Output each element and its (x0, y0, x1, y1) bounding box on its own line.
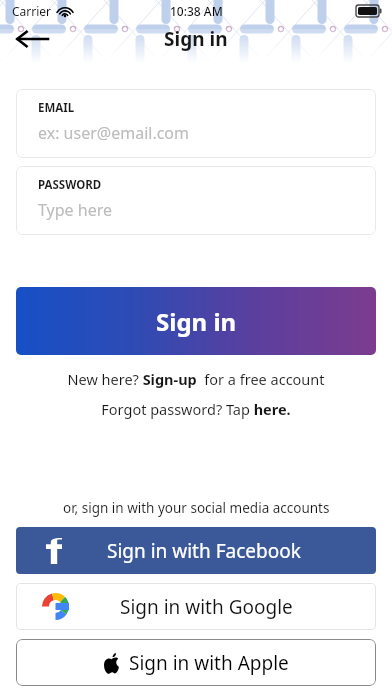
staticText: 10:38 AM (170, 3, 223, 19)
staticText: Type here (38, 199, 112, 221)
staticText: Sign in with Google (120, 594, 293, 620)
staticText: Carrier (12, 3, 52, 19)
button[interactable]: Sign in with Facebook (16, 527, 376, 574)
staticText: Forgot password? Tap here. (101, 399, 291, 419)
staticText: or, sign in with your social media accou… (63, 499, 330, 517)
staticText: EMAIL (38, 100, 75, 116)
staticText: Sign in with Facebook (107, 538, 301, 564)
button[interactable]: Sign in with Apple (16, 639, 376, 686)
staticText: Sign in (164, 26, 228, 52)
staticText: New here? Sign-up for a free account (67, 369, 325, 389)
staticText: PASSWORD (38, 177, 102, 193)
staticText: Sign in (156, 305, 237, 338)
button[interactable]: PASSWORD (16, 166, 376, 235)
button[interactable]: New here? Sign-up for a free account (67, 367, 325, 391)
button[interactable]: Forgot password? Tap here. (101, 397, 291, 421)
button[interactable]: Sign in (16, 287, 376, 355)
button[interactable]: Back (10, 22, 54, 56)
button[interactable]: Sign in with Google (16, 583, 376, 630)
button[interactable]: EMAIL (16, 89, 376, 158)
staticText: Sign in with Apple (129, 650, 289, 676)
staticText: ex: user@email.com (38, 122, 190, 144)
